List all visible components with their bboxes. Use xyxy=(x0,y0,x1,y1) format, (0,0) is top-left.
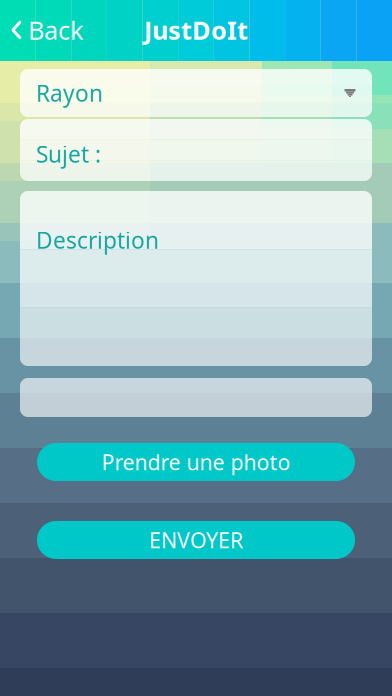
staticText: ENVOYER xyxy=(149,526,243,554)
button[interactable]: Prendre une photo xyxy=(37,443,355,481)
staticText: Rayon xyxy=(36,78,103,108)
button[interactable]: Text field xyxy=(20,378,372,417)
staticText: Description xyxy=(36,225,159,255)
button[interactable]: ENVOYER xyxy=(37,521,355,559)
button[interactable]: Description xyxy=(20,191,372,366)
button[interactable]: Back xyxy=(0,5,84,55)
button[interactable]: Sujet xyxy=(20,119,372,181)
button[interactable]: Rayon xyxy=(20,69,372,117)
staticText: Prendre une photo xyxy=(101,448,290,476)
staticText: Back xyxy=(28,13,84,47)
staticText: JustDoIt xyxy=(144,13,248,47)
staticText: Sujet : xyxy=(36,139,101,169)
